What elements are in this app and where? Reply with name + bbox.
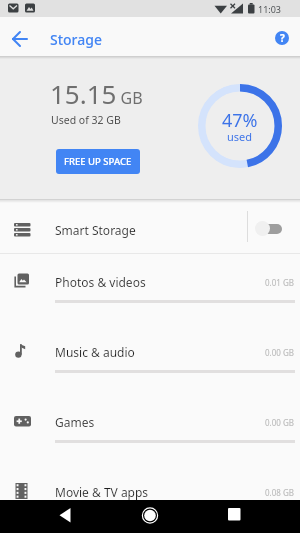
staticText: Movie & TV apps <box>55 484 149 500</box>
staticText: ? <box>280 31 285 45</box>
staticText: FREE UP SPACE <box>64 155 132 168</box>
button[interactable]: Smart Storage <box>0 200 300 253</box>
button[interactable] <box>55 503 79 527</box>
button[interactable]: FREE UP SPACE <box>56 149 140 174</box>
staticText: Games <box>55 414 95 430</box>
staticText: Music & audio <box>55 344 135 360</box>
staticText: 0.01 GB <box>265 277 294 288</box>
staticText: Photos & videos <box>55 274 146 290</box>
staticText: 0.08 GB <box>265 487 294 498</box>
staticText: used <box>227 129 253 144</box>
staticText: Storage <box>50 30 102 49</box>
staticText: 47% <box>222 108 258 133</box>
button[interactable] <box>251 213 287 241</box>
button[interactable]: Music & audio <box>0 323 300 393</box>
button[interactable]: ? <box>275 31 289 45</box>
staticText: 0.00 GB <box>265 417 294 428</box>
staticText: 15.15 GB <box>50 76 143 111</box>
button[interactable]: Games <box>0 393 300 463</box>
button[interactable]: Photos & videos <box>0 253 300 323</box>
button[interactable]: Movie & TV apps <box>0 463 300 533</box>
staticText: 0.00 GB <box>265 347 294 358</box>
button[interactable] <box>8 25 32 49</box>
staticText: Smart Storage <box>55 222 136 238</box>
staticText: Used of 32 GB <box>51 113 121 127</box>
button[interactable] <box>222 503 246 527</box>
button[interactable] <box>138 503 162 527</box>
staticText: 11:03 <box>258 3 282 15</box>
